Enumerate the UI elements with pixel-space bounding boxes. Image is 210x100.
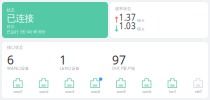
button[interactable]: wan6: [134, 78, 160, 94]
staticText: 接口状态: [7, 45, 23, 50]
button[interactable]: wan3: [56, 78, 82, 94]
button[interactable]: wan1: [5, 78, 31, 94]
staticText: 1: [59, 52, 66, 68]
staticText: wan6: [142, 89, 151, 94]
staticText: wan2: [39, 89, 48, 94]
staticText: 1.03: [119, 21, 136, 31]
staticText: lan1: [169, 89, 176, 94]
button[interactable]: wan5: [108, 78, 134, 94]
button[interactable]: 状态: [2, 2, 108, 38]
staticText: 1.37: [119, 12, 136, 23]
staticText: 6: [7, 52, 14, 68]
staticText: wan1: [13, 89, 22, 94]
staticText: wan5: [116, 89, 125, 94]
staticText: wan3: [65, 89, 74, 94]
staticText: KB/s: [137, 18, 145, 23]
staticText: 时长: [7, 24, 15, 29]
staticText: 已连接: [7, 13, 34, 24]
staticText: DHCP客户端: [112, 66, 135, 71]
staticText: WAN口设备: [7, 66, 29, 71]
staticText: KB/s: [137, 26, 145, 31]
staticText: 已运行 3天14小时30分: [7, 29, 46, 34]
staticText: 速率状态: [115, 6, 131, 11]
staticText: 97: [112, 52, 126, 68]
button[interactable]: wan2: [31, 78, 57, 94]
staticText: 状态: [7, 8, 15, 13]
staticText: wan4: [91, 89, 100, 94]
staticText: eth7: [195, 89, 202, 94]
button[interactable]: eth7: [185, 78, 210, 94]
button[interactable]: wan4: [82, 78, 108, 94]
staticText: LAN口设备: [59, 66, 79, 71]
button[interactable]: lan1: [159, 78, 185, 94]
